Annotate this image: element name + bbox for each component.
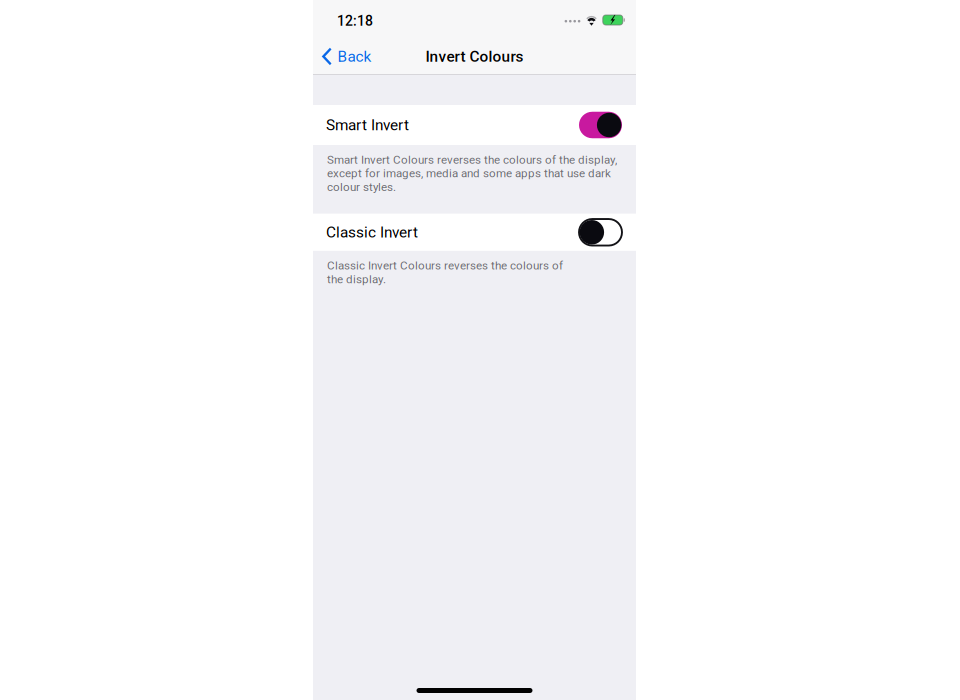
- staticText: Back: [337, 47, 371, 65]
- staticText: 12:18: [337, 13, 373, 29]
- staticText: Classic Invert: [326, 223, 418, 241]
- staticText: Smart Invert: [326, 116, 409, 134]
- button[interactable]: Classic Invert: [313, 214, 636, 251]
- button[interactable]: Smart Invert: [313, 105, 636, 145]
- button[interactable]: Back: [313, 38, 381, 75]
- staticText: Classic Invert Colours reverses the colo…: [327, 259, 563, 286]
- staticText: Smart Invert Colours reverses the colour…: [327, 153, 617, 194]
- staticText: Invert Colours: [425, 47, 523, 65]
